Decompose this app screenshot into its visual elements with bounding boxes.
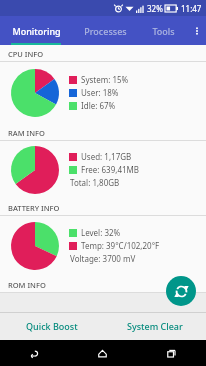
button[interactable]: Quick Boost — [0, 312, 103, 340]
staticText: CPU INFO — [8, 49, 44, 59]
staticText: Idle: 67% — [81, 100, 116, 111]
staticText: 32% — [147, 3, 163, 14]
staticText: System Clear — [127, 320, 183, 332]
staticText: 11:47 — [181, 3, 202, 14]
button[interactable]: Tools — [138, 16, 188, 45]
staticText: Total: 1,80GB — [70, 177, 120, 188]
staticText: User: 18% — [81, 87, 119, 98]
button[interactable]: System Clear — [103, 312, 206, 340]
staticText: Quick Boost — [26, 320, 78, 332]
button[interactable]: More options — [188, 16, 206, 45]
staticText: Monitoring — [12, 25, 61, 37]
button[interactable]: Home — [68, 340, 137, 366]
staticText: RAM INFO — [8, 128, 45, 138]
button[interactable]: Monitoring — [0, 16, 72, 45]
staticText: Processes — [84, 25, 127, 37]
button[interactable]: Back — [0, 340, 68, 366]
staticText: ROM INFO — [8, 280, 46, 290]
staticText: BATTERY INFO — [8, 203, 60, 213]
staticText: System: 15% — [81, 74, 129, 85]
button[interactable]: Refresh — [166, 276, 196, 306]
staticText: Level: 32% — [81, 227, 121, 238]
staticText: Temp: 39°C/102,20°F — [81, 240, 160, 251]
staticText: Tools — [152, 25, 175, 37]
staticText: Used: 1,17GB — [81, 151, 132, 162]
staticText: Free: 639,41MB — [81, 164, 140, 175]
staticText: Voltage: 3700 mV — [70, 253, 136, 264]
button[interactable]: Processes — [72, 16, 138, 45]
button[interactable]: Recent apps — [137, 340, 206, 366]
